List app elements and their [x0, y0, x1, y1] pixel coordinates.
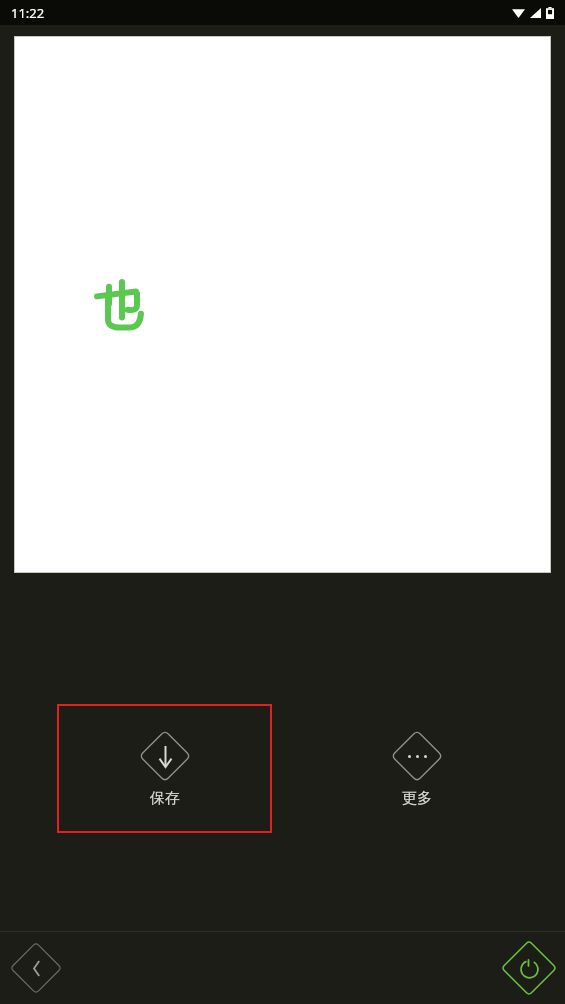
staticText: 更多 — [402, 789, 432, 808]
staticText: 保存 — [150, 789, 180, 808]
button[interactable]: Back — [10, 942, 62, 994]
button[interactable]: Redo — [501, 940, 557, 996]
button[interactable]: Drawing canvas — [14, 36, 551, 573]
staticText: 11:22 — [11, 4, 45, 22]
button[interactable]: 保存 — [57, 704, 272, 833]
button[interactable]: 更多 — [364, 704, 469, 833]
